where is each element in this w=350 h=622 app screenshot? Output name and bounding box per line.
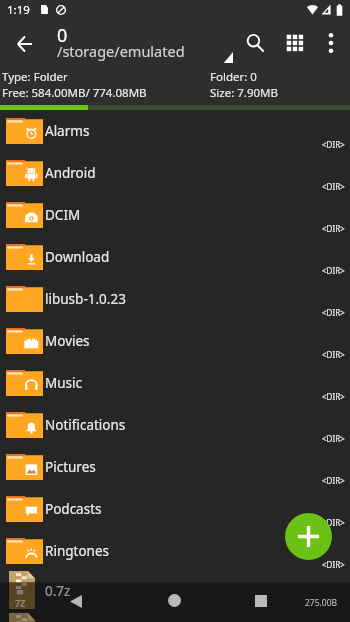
staticText: <DIR> xyxy=(322,349,345,360)
staticText: libusb-1.0.23 xyxy=(45,290,126,308)
button[interactable]: 7Z xyxy=(0,567,350,609)
staticText: Pictures xyxy=(45,458,96,476)
staticText: /storage/emulated xyxy=(57,41,185,61)
button[interactable]: Music xyxy=(0,362,350,404)
staticText: Notifications xyxy=(45,416,126,434)
staticText: <DIR> xyxy=(322,433,345,444)
button[interactable]: Back xyxy=(70,595,82,608)
staticText: Size: 7.90MB xyxy=(210,85,278,101)
staticText: <DIR> xyxy=(322,475,345,486)
button[interactable]: Alarms xyxy=(0,110,350,152)
staticText: <DIR> xyxy=(322,139,345,150)
button[interactable]: Movies xyxy=(0,320,350,362)
staticText: 0.7z xyxy=(45,582,71,600)
staticText: <DIR> xyxy=(322,517,345,528)
button[interactable]: Search xyxy=(241,29,269,57)
staticText: 1:19 xyxy=(7,2,30,18)
button[interactable]: Ringtones xyxy=(0,530,350,572)
staticText: 7Z xyxy=(15,597,26,609)
staticText: Type: Folder xyxy=(2,69,68,85)
button[interactable]: Back xyxy=(9,29,39,59)
staticText: Download xyxy=(45,248,110,266)
staticText: <DIR> xyxy=(322,391,345,402)
staticText: <DIR> xyxy=(322,307,345,318)
button[interactable]: More options xyxy=(317,29,345,57)
button[interactable]: Download xyxy=(0,236,350,278)
button[interactable]: Pictures xyxy=(0,446,350,488)
staticText: Alarms xyxy=(45,122,90,140)
button[interactable]: Home xyxy=(168,594,181,607)
button[interactable]: Android xyxy=(0,152,350,194)
staticText: 0 xyxy=(57,23,68,48)
button[interactable]: Add xyxy=(285,513,332,560)
staticText: Android xyxy=(45,164,96,182)
staticText: <DIR> xyxy=(322,559,345,570)
button[interactable]: DCIM xyxy=(0,194,350,236)
button[interactable]: Notifications xyxy=(0,404,350,446)
staticText: Ringtones xyxy=(45,542,109,560)
staticText: Folder: 0 xyxy=(210,69,257,85)
staticText: <DIR> xyxy=(322,265,345,276)
staticText: Podcasts xyxy=(45,500,102,518)
staticText: 275.00B xyxy=(305,597,338,609)
button[interactable]: Podcasts xyxy=(0,488,350,530)
button[interactable]: libusb-1.0.23 xyxy=(0,278,350,320)
staticText: Movies xyxy=(45,332,90,350)
staticText: <DIR> xyxy=(322,181,345,192)
staticText: Music xyxy=(45,374,83,392)
staticText: DCIM xyxy=(45,206,81,224)
staticText: Free: 584.00MB/ 774.08MB xyxy=(2,85,147,101)
button[interactable]: Grid view xyxy=(281,29,309,57)
staticText: <DIR> xyxy=(322,223,345,234)
